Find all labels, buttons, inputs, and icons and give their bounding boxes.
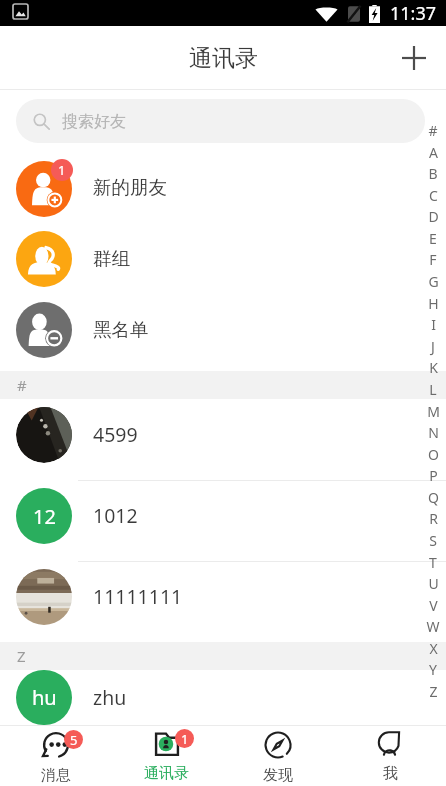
button[interactable]: Alphabet index xyxy=(420,121,446,701)
staticText: E xyxy=(429,229,437,248)
staticText: 1 xyxy=(181,730,189,748)
staticText: 1012 xyxy=(93,502,138,529)
staticText: 我 xyxy=(383,764,398,783)
staticText: B xyxy=(428,164,438,183)
staticText: F xyxy=(429,250,437,269)
staticText: 12 xyxy=(33,503,56,530)
staticText: Z xyxy=(17,646,26,666)
button[interactable]: 11111111 xyxy=(0,561,446,642)
staticText: hu xyxy=(32,684,57,711)
staticText: H xyxy=(428,294,439,313)
staticText: A xyxy=(429,143,438,162)
staticText: D xyxy=(428,207,439,226)
staticText: 群组 xyxy=(93,247,130,270)
staticText: 消息 xyxy=(41,766,71,785)
staticText: W xyxy=(426,617,440,636)
staticText: 通讯录 xyxy=(144,764,189,783)
staticText: L xyxy=(429,380,437,399)
button[interactable]: 5 xyxy=(0,726,111,786)
button[interactable]: 黑名单 xyxy=(0,294,446,365)
button[interactable]: Add contact xyxy=(386,30,442,86)
staticText: K xyxy=(429,358,438,377)
staticText: U xyxy=(428,574,439,593)
staticText: Y xyxy=(429,660,437,679)
staticText: # xyxy=(428,121,438,140)
button[interactable]: 12 xyxy=(0,480,446,561)
staticText: G xyxy=(428,272,439,291)
staticText: Z xyxy=(429,682,438,701)
staticText: C xyxy=(429,186,438,205)
staticText: T xyxy=(429,553,437,572)
button[interactable]: hu xyxy=(0,670,446,725)
button[interactable]: 1 xyxy=(0,152,446,223)
staticText: P xyxy=(429,466,438,485)
staticText: X xyxy=(429,639,438,658)
staticText: V xyxy=(429,596,438,615)
staticText: O xyxy=(428,445,439,464)
button[interactable]: 我 xyxy=(334,726,446,786)
staticText: I xyxy=(431,315,436,334)
button[interactable]: 4599 xyxy=(0,399,446,480)
button[interactable]: 群组 xyxy=(0,223,446,294)
button[interactable]: 发现 xyxy=(222,726,334,786)
staticText: M xyxy=(427,402,440,421)
staticText: S xyxy=(429,531,437,550)
staticText: 11:37 xyxy=(390,1,437,26)
staticText: R xyxy=(429,509,438,528)
staticText: N xyxy=(428,423,439,442)
staticText: J xyxy=(431,337,435,356)
staticText: 发现 xyxy=(263,766,293,785)
staticText: 11111111 xyxy=(93,583,183,610)
button[interactable]: 搜索好友 xyxy=(16,99,425,143)
staticText: 黑名单 xyxy=(93,318,149,341)
staticText: Q xyxy=(428,488,439,507)
staticText: 1 xyxy=(58,161,66,179)
button[interactable]: 1 xyxy=(111,726,222,786)
staticText: # xyxy=(17,375,27,395)
staticText: 5 xyxy=(70,731,78,749)
staticText: 4599 xyxy=(93,421,138,448)
staticText: 新的朋友 xyxy=(93,176,167,199)
staticText: 通讯录 xyxy=(189,44,258,73)
staticText: 搜索好友 xyxy=(62,112,126,132)
staticText: zhu xyxy=(93,684,127,711)
